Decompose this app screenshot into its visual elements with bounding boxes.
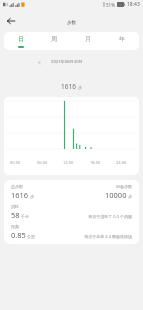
staticText: 18:43 [127, 1, 140, 8]
staticText: 步 [30, 194, 34, 199]
staticText: 1616 [11, 190, 29, 200]
staticText: 目标步数 [116, 184, 132, 189]
staticText: 06:00 [37, 160, 48, 165]
staticText: 距离 [11, 224, 19, 229]
staticText: 消耗 [11, 204, 19, 209]
staticText: 0.85 [11, 230, 26, 240]
staticText: 相当于走路 2.4 圈标准操场 [61, 234, 132, 239]
staticText: 周 [51, 35, 57, 43]
button[interactable]: 周 [37, 32, 71, 50]
staticText: 58 [11, 210, 20, 220]
staticText: 总步数 [11, 184, 23, 189]
staticText: 年 [119, 35, 125, 43]
staticText: 00:00 [10, 160, 21, 165]
staticText: 24:00 [116, 160, 127, 165]
staticText: 1616 [61, 82, 76, 91]
staticText: 步 [78, 85, 82, 90]
button[interactable]: 日 [4, 32, 37, 50]
button[interactable]: 年 [105, 32, 139, 50]
button[interactable]: Back [4, 14, 18, 28]
staticText: 步 [128, 194, 132, 199]
staticText: 12:00 [63, 160, 74, 165]
staticText: 18:00 [90, 160, 101, 165]
button[interactable]: Previous day [35, 58, 43, 66]
staticText: 相当于消耗了 0.3 个鸡腿 [61, 214, 132, 219]
staticText: 2021年08月30日 [51, 59, 83, 65]
staticText: 月 [85, 35, 91, 43]
staticText: 日 [18, 35, 24, 43]
staticText: 千卡 [21, 214, 29, 219]
staticText: 51% [106, 2, 115, 8]
staticText: 公里 [27, 234, 35, 239]
button[interactable]: 月 [71, 32, 105, 50]
staticText: 步数 [67, 20, 77, 26]
staticText: 10000 [105, 190, 127, 200]
